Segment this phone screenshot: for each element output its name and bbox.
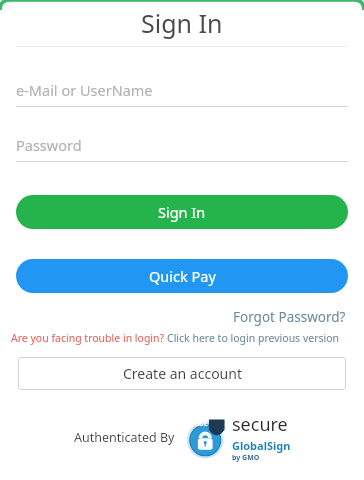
staticText: e-Mail or UserName [16, 80, 153, 100]
button[interactable]: Forgot Password? [231, 307, 348, 327]
button[interactable]: Password [0, 135, 364, 162]
button[interactable]: Click here to login previous version [167, 331, 340, 345]
staticText: SSL [196, 419, 208, 429]
staticText: by GMO [232, 453, 260, 463]
staticText: Forgot Password? [233, 308, 346, 326]
button[interactable]: Create an account [18, 357, 346, 390]
staticText: Sign In [141, 6, 223, 40]
staticText: Password [16, 135, 82, 155]
staticText: Authenticated By [74, 429, 175, 446]
button[interactable]: Sign In [16, 195, 348, 229]
staticText: Sign In [158, 202, 206, 222]
button[interactable]: Quick Pay [16, 259, 348, 293]
staticText: Click here to login previous version [167, 331, 340, 345]
staticText: secure [232, 412, 288, 437]
button[interactable]: e-Mail or UserName [0, 80, 364, 107]
staticText: Quick Pay [149, 266, 216, 286]
staticText: Are you facing trouble in login? [11, 331, 167, 345]
other: GlobalSign SSL secure seal [185, 415, 231, 461]
staticText: Create an account [123, 364, 242, 383]
staticText: GlobalSign [232, 438, 291, 453]
